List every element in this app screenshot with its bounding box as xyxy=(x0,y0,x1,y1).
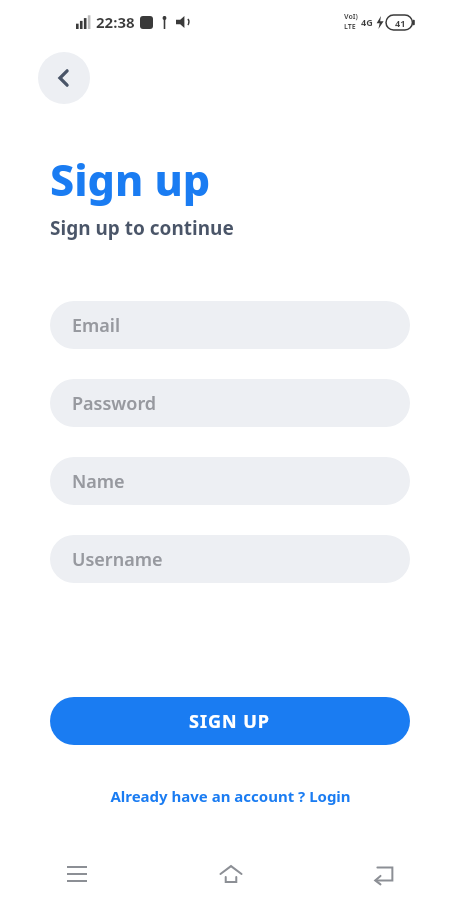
staticText: 4G xyxy=(361,16,373,28)
staticText: Sign up xyxy=(50,150,211,209)
staticText: Email xyxy=(72,313,121,338)
staticText: Already have an account ? Login xyxy=(110,786,351,806)
button[interactable]: SIGN UP xyxy=(50,697,410,745)
staticText: LTE xyxy=(344,22,356,32)
button[interactable]: Already have an account ? Login xyxy=(0,786,460,806)
button[interactable]: Username xyxy=(50,535,410,583)
button[interactable]: Email xyxy=(50,301,410,349)
staticText: 41 xyxy=(395,17,406,29)
button[interactable]: Back xyxy=(38,52,90,104)
button[interactable]: Home xyxy=(154,848,307,900)
button[interactable]: Recents xyxy=(0,848,154,900)
staticText: SIGN UP xyxy=(189,709,271,734)
staticText: Username xyxy=(72,547,163,572)
staticText: VoI) xyxy=(344,12,358,22)
staticText: Name xyxy=(72,469,125,494)
staticText: 22:38 xyxy=(96,12,135,32)
staticText: Sign up to continue xyxy=(50,215,234,241)
button[interactable]: Password xyxy=(50,379,410,427)
staticText: Password xyxy=(72,391,157,416)
button[interactable]: Back xyxy=(307,848,460,900)
button[interactable]: Name xyxy=(50,457,410,505)
